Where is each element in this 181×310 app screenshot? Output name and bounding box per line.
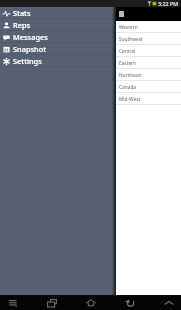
staticText: Southwest [119,36,143,43]
staticText: Mid-West [119,96,141,103]
staticText: Reps [13,20,31,30]
button[interactable]: Stats [0,7,116,19]
button[interactable]: Eastern [116,57,181,69]
staticText: Northeast [119,72,142,79]
staticText: Western [119,24,138,31]
button[interactable]: Northeast [116,69,181,81]
button[interactable]: Menu [0,295,25,310]
button[interactable]: Home [78,295,103,310]
button[interactable]: Snapshot [0,43,116,55]
button[interactable]: Reps [0,19,116,31]
button[interactable]: Mid-West [116,93,181,105]
button[interactable]: Expand [156,295,181,310]
staticText: Snapshot [13,44,47,54]
staticText: 3:22 PM [158,0,179,7]
staticText: Settings [13,56,42,66]
button[interactable]: Central [116,45,181,57]
staticText: Messages [13,32,48,42]
button[interactable]: Back [117,295,142,310]
button[interactable]: Southwest [116,33,181,45]
staticText: Eastern [119,60,137,67]
staticText: Central [119,48,136,55]
button[interactable]: Recent apps [39,295,64,310]
button[interactable]: Messages [0,31,116,43]
staticText: Stats [13,8,31,18]
button[interactable]: Western [116,21,181,33]
button[interactable]: Canada [116,81,181,93]
staticText: Canada [119,84,137,91]
button[interactable]: Settings [0,55,116,67]
